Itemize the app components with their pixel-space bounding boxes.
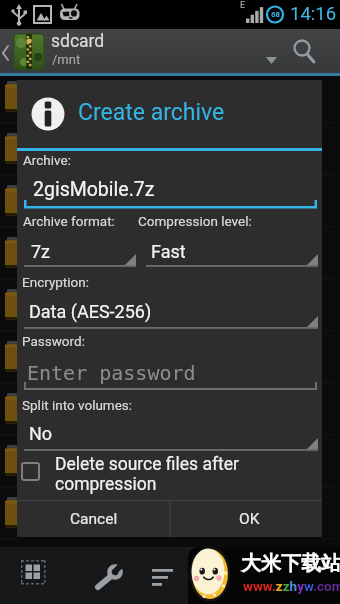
staticText: E — [240, 0, 246, 11]
staticText: Fast — [151, 241, 186, 262]
button[interactable] — [24, 300, 318, 329]
staticText: 7z — [31, 241, 51, 262]
button[interactable] — [188, 547, 340, 604]
button[interactable] — [88, 555, 133, 597]
staticText: Encryption: — [22, 274, 89, 290]
staticText: No — [29, 423, 53, 444]
staticText: Password: — [22, 333, 85, 349]
button[interactable] — [24, 240, 136, 267]
button[interactable]: Cancel — [17, 501, 169, 537]
button[interactable] — [10, 555, 55, 597]
staticText: Archive format: — [23, 213, 115, 229]
button[interactable] — [146, 240, 318, 267]
staticText: 大米下载站 — [241, 551, 340, 576]
staticText: Compression level: — [138, 213, 252, 229]
button[interactable] — [24, 360, 317, 390]
staticText: Enter password — [27, 361, 196, 384]
staticText: 2gisMobile.7z — [33, 178, 155, 201]
staticText: 14:16 — [290, 3, 337, 25]
button[interactable]: OK — [170, 501, 322, 537]
staticText: compression — [55, 474, 157, 495]
staticText: Split into volumes: — [22, 397, 133, 413]
staticText: Cancel — [70, 510, 118, 528]
staticText: Create archive — [78, 99, 225, 126]
staticText: 68 — [271, 10, 281, 19]
staticText: www.zzhyw.com — [243, 578, 340, 594]
button[interactable] — [19, 455, 309, 497]
button[interactable] — [24, 422, 318, 451]
button[interactable] — [17, 176, 322, 210]
staticText: /mnt — [52, 52, 81, 67]
staticText: sdcard — [51, 31, 105, 52]
button[interactable] — [143, 555, 188, 597]
staticText: Data (AES-256) — [29, 301, 152, 322]
staticText: Delete source files after — [55, 454, 239, 475]
staticText: Archive: — [23, 152, 71, 168]
staticText: OK — [239, 510, 260, 528]
